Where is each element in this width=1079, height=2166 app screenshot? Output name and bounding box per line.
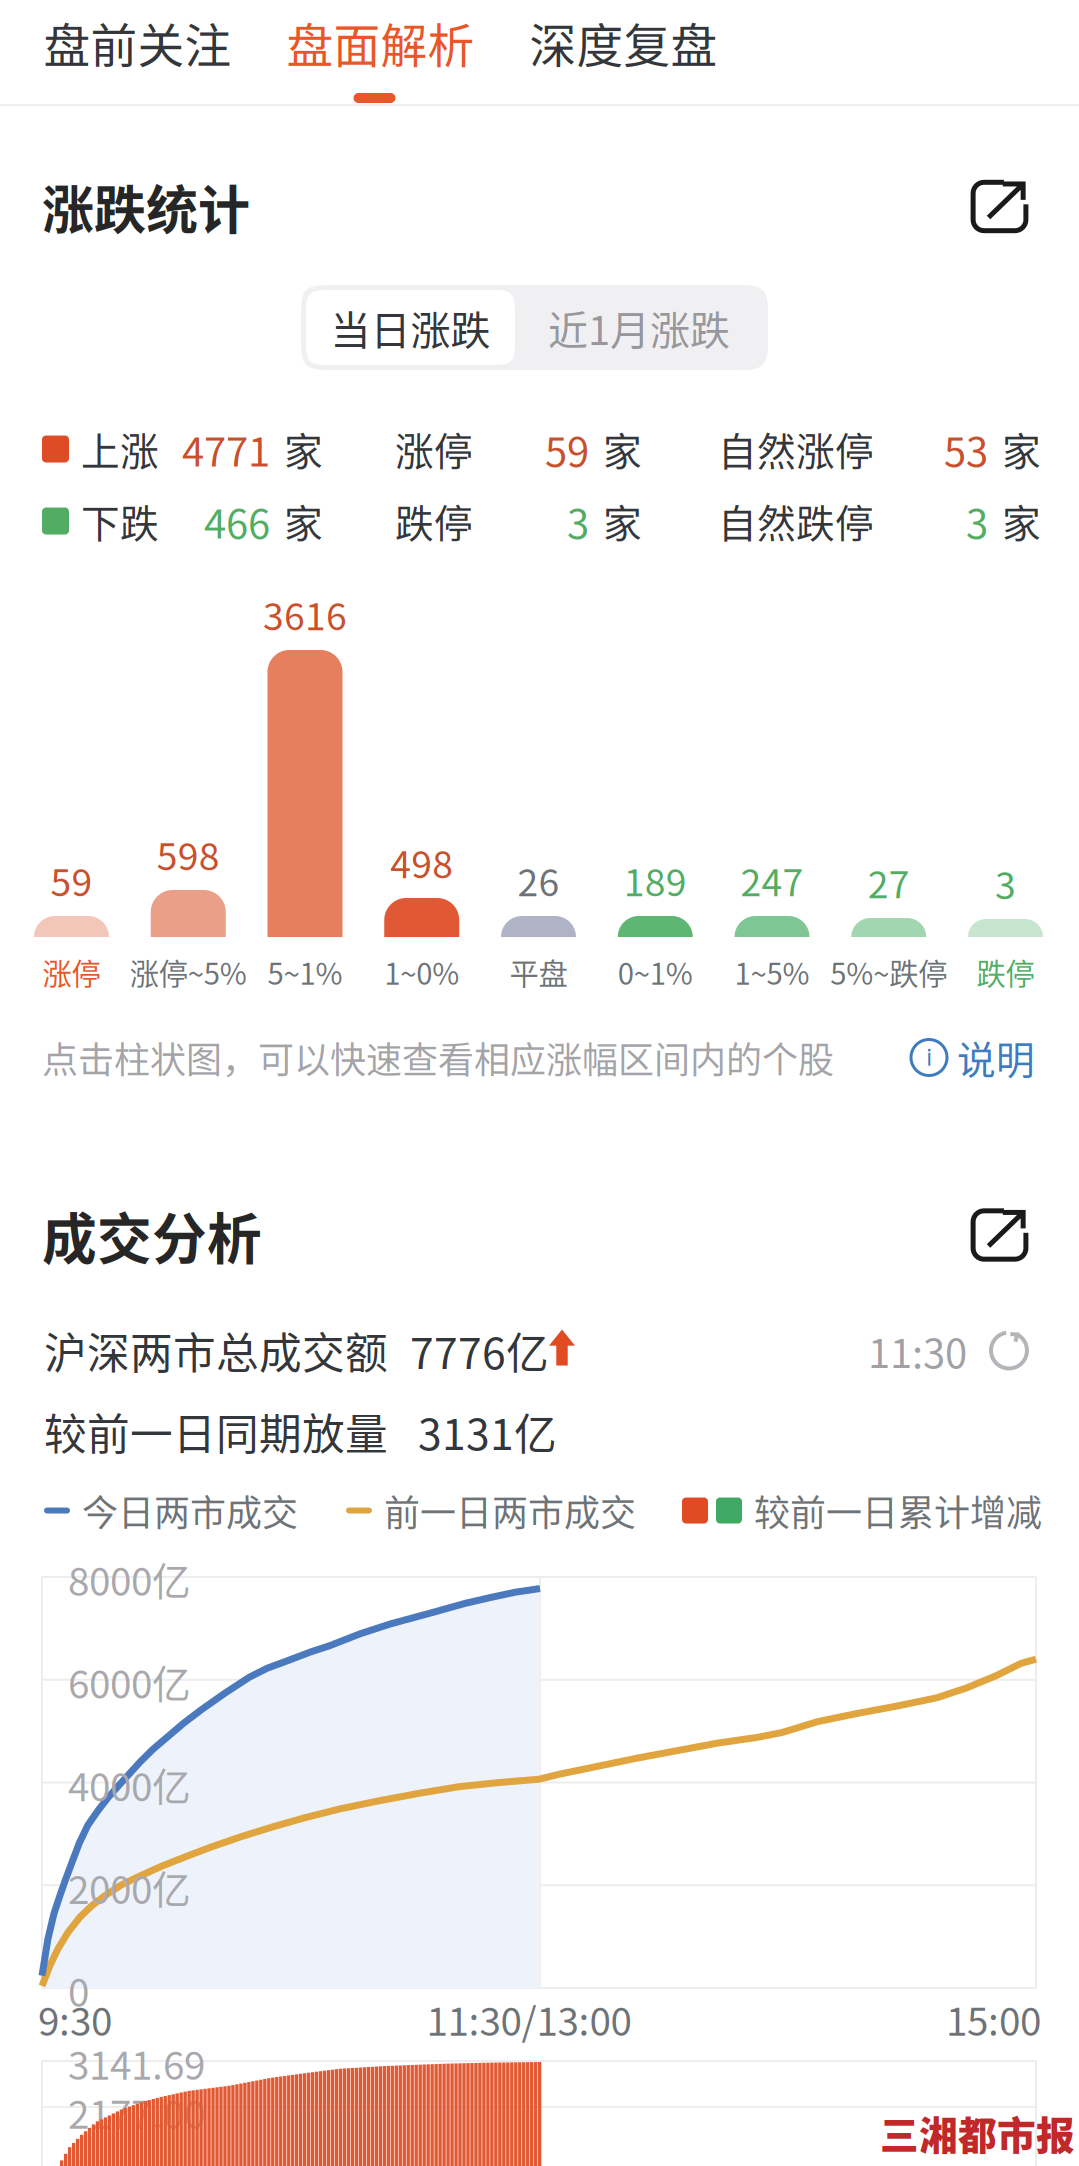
button[interactable]: 刷新 <box>989 1330 1029 1370</box>
button[interactable]: 打开成交分析详情 <box>972 1207 1027 1262</box>
staticText: 下跌 <box>81 493 159 549</box>
staticText: 平盘 <box>509 951 567 993</box>
staticText: 较前一日累计增减 <box>754 1484 1042 1536</box>
staticText: 近1月涨跌 <box>548 298 730 356</box>
staticText: 26 <box>517 853 559 907</box>
staticText: 53 <box>944 420 988 478</box>
staticText: 0~1% <box>618 951 693 993</box>
staticText: 6000亿 <box>68 1654 191 1710</box>
staticText: 7776亿 <box>410 1320 549 1381</box>
staticText: 家 <box>603 421 642 477</box>
staticText: 59 <box>545 420 589 478</box>
staticText: 5~1% <box>267 951 342 993</box>
staticText: 598 <box>157 827 220 881</box>
staticText: 家 <box>603 493 642 549</box>
staticText: 今日两市成交 <box>82 1484 298 1536</box>
button[interactable]: 深度复盘 <box>502 9 745 76</box>
staticText: 466 <box>204 492 270 550</box>
staticText: 4000亿 <box>68 1756 191 1812</box>
staticText: 当日涨跌 <box>330 298 490 356</box>
staticText: 8000亿 <box>68 1551 191 1607</box>
staticText: 4771 <box>182 420 270 478</box>
button[interactable]: 盘前关注 <box>16 9 259 76</box>
staticText: 3141.69 <box>68 2035 205 2091</box>
staticText: 15:00 <box>946 1991 1041 2047</box>
button[interactable]: 盘面解析 <box>259 9 502 103</box>
staticText: 深度复盘 <box>529 9 717 76</box>
staticText: 说明 <box>957 1029 1035 1085</box>
staticText: 盘前关注 <box>43 9 231 76</box>
staticText: 自然跌停 <box>718 493 874 549</box>
staticText: 成交分析 <box>42 1195 262 1275</box>
staticText: 11:30 <box>868 1321 967 1379</box>
staticText: 247 <box>740 853 803 907</box>
staticText: 家 <box>284 421 323 477</box>
staticText: 盘面解析 <box>286 9 474 76</box>
staticText: 189 <box>624 853 687 907</box>
staticText: 涨停 <box>395 421 473 477</box>
staticText: 3 <box>567 492 589 550</box>
staticText: 1~5% <box>734 951 809 993</box>
staticText: 点击柱状图，可以快速查看相应涨幅区间内的个股 <box>42 1031 834 1083</box>
staticText: 11:30/13:00 <box>426 1991 631 2047</box>
staticText: 3 <box>966 492 988 550</box>
staticText: 家 <box>284 493 323 549</box>
staticText: 家 <box>1002 421 1041 477</box>
button[interactable]: 打开涨跌统计详情 <box>972 179 1027 234</box>
button[interactable]: i <box>911 1029 1035 1085</box>
button[interactable]: 当日涨跌 <box>306 290 515 365</box>
staticText: 9:30 <box>38 1991 112 2047</box>
staticText: 前一日两市成交 <box>384 1484 636 1536</box>
staticText: 涨停 <box>42 951 100 993</box>
staticText: 27 <box>868 855 910 909</box>
staticText: 自然涨停 <box>718 421 874 477</box>
staticText: 三湘都市报 <box>880 2105 1075 2161</box>
staticText: 5%~跌停 <box>830 951 947 993</box>
staticText: 3131亿 <box>418 1401 557 1462</box>
button[interactable]: 近1月涨跌 <box>515 290 763 365</box>
staticText: 上涨 <box>81 421 159 477</box>
staticText: 59 <box>50 853 92 907</box>
staticText: 家 <box>1002 493 1041 549</box>
staticText: 涨跌统计 <box>42 169 250 244</box>
staticText: 0 <box>68 1962 89 2018</box>
staticText: 涨停~5% <box>130 951 247 993</box>
staticText: 沪深两市总成交额 <box>44 1320 388 1381</box>
staticText: 跌停 <box>976 951 1034 993</box>
staticText: i <box>926 1044 931 1071</box>
staticText: 498 <box>390 835 453 889</box>
staticText: 1~0% <box>384 951 459 993</box>
staticText: 2000亿 <box>68 1859 191 1915</box>
staticText: 较前一日同期放量 <box>44 1401 388 1462</box>
staticText: 2177.00 <box>68 2084 205 2140</box>
staticText: 跌停 <box>395 493 473 549</box>
staticText: 3 <box>995 856 1016 910</box>
staticText: 3616 <box>263 587 347 641</box>
